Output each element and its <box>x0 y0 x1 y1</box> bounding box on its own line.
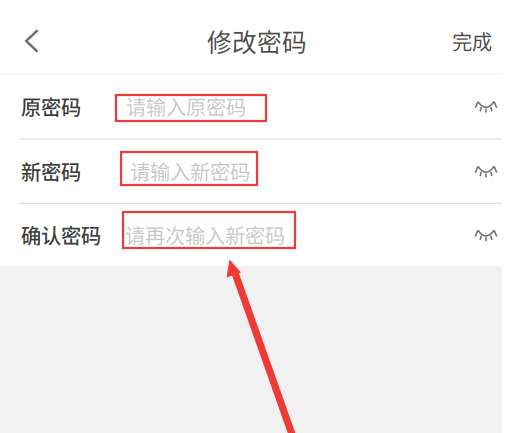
staticText: 请再次输入新密码 <box>125 220 285 250</box>
staticText: 请输入新密码 <box>130 156 250 186</box>
staticText: 新密码 <box>21 156 81 186</box>
staticText: 确认密码 <box>21 220 101 250</box>
button[interactable]: Show password <box>464 204 508 266</box>
button[interactable]: Show password <box>464 140 508 203</box>
button[interactable]: Show password <box>464 74 508 138</box>
staticText: 修改密码 <box>207 23 307 59</box>
button[interactable]: 完成 <box>442 0 502 82</box>
button[interactable]: Back <box>0 0 64 82</box>
staticText: 完成 <box>452 26 492 56</box>
staticText: 原密码 <box>21 92 81 121</box>
staticText: 请输入原密码 <box>126 92 246 121</box>
